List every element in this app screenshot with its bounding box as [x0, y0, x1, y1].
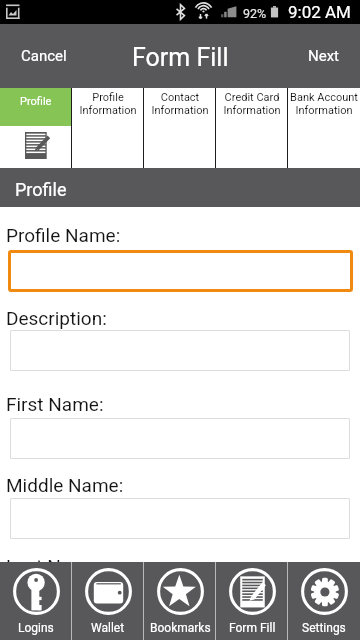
button[interactable]: Form Fill [216, 562, 288, 640]
button[interactable]: Profile [0, 88, 72, 168]
staticText: 9:02 AM [288, 2, 351, 22]
staticText: Last Name: [6, 555, 103, 577]
staticText: Description: [6, 307, 107, 329]
staticText: Profile [15, 179, 67, 200]
staticText: First Name: [6, 393, 104, 415]
staticText: Contact Information [151, 91, 209, 117]
button[interactable]: Profile Information [72, 88, 144, 168]
button[interactable]: Settings [288, 562, 360, 640]
button[interactable]: Bookmarks [144, 562, 216, 640]
staticText: Profile Name: [6, 224, 121, 246]
button[interactable]: Credit Card Information [216, 88, 288, 168]
button[interactable]: Wallet [72, 562, 144, 640]
button[interactable]: Next [287, 24, 360, 88]
button[interactable]: Contact Information [144, 88, 216, 168]
staticText: Credit Card Information [223, 91, 281, 117]
staticText: Settings [302, 621, 346, 635]
button[interactable]: Logins [0, 562, 72, 640]
staticText: Middle Name: [6, 474, 124, 496]
staticText: Wallet [91, 621, 125, 635]
staticText: Bank Account Information [290, 91, 358, 117]
button[interactable]: Bank Account Information [288, 88, 360, 168]
staticText: Form Fill [132, 43, 229, 72]
staticText: 92% [243, 6, 267, 21]
staticText: Next [308, 47, 340, 65]
staticText: Profile Information [79, 91, 137, 117]
button[interactable] [10, 418, 350, 459]
staticText: Logins [18, 621, 54, 635]
staticText: Profile [20, 95, 52, 108]
staticText: Bookmarks [150, 621, 211, 635]
staticText: Form Fill [229, 621, 276, 635]
button[interactable] [10, 330, 350, 371]
button[interactable] [8, 250, 353, 292]
staticText: Cancel [21, 47, 67, 65]
button[interactable] [10, 498, 350, 539]
button[interactable]: Cancel [0, 24, 88, 88]
